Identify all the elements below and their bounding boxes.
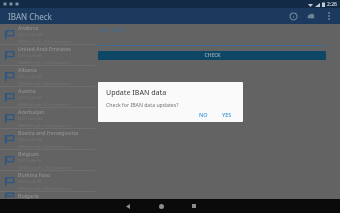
staticText: YES (222, 111, 232, 118)
staticText: IBAN length: 20 characters (18, 102, 71, 107)
staticText: Enter IBAN (98, 27, 124, 34)
staticText: ISO Code AL (18, 74, 43, 80)
button[interactable]: Bulgaria (0, 192, 95, 199)
staticText: Burkina Faso (18, 171, 51, 178)
button[interactable]: Burkina Faso (0, 171, 95, 191)
staticText: ISO Code BA (18, 137, 43, 143)
staticText: Andorra (18, 24, 39, 31)
button[interactable]: Belgium (0, 150, 95, 170)
button[interactable]: Azerbaijan (0, 108, 95, 128)
staticText: IBAN length: 28 characters (18, 186, 71, 191)
staticText: 2:26 (327, 1, 337, 8)
staticText: ISO Code AZ (18, 116, 43, 122)
staticText: ISO Code AT (18, 95, 42, 101)
staticText: ISO Code BE (18, 158, 43, 164)
button[interactable]: Bosnia and Herzegovina (0, 129, 95, 149)
staticText: Bulgaria (18, 192, 39, 199)
staticText: Bosnia and Herzegovina (18, 129, 78, 136)
staticText: Check for IBAN data updates? (106, 101, 179, 108)
button[interactable]: Info (287, 10, 299, 22)
staticText: IBAN length: 28 characters (18, 81, 71, 86)
button[interactable]: Home (153, 199, 169, 213)
button[interactable]: NO (194, 110, 213, 119)
staticText: Austria (18, 87, 36, 94)
button[interactable]: More options (323, 10, 335, 22)
staticText: IBAN length: 16 characters (18, 165, 71, 170)
button[interactable]: Albania (0, 66, 95, 86)
staticText: IBAN length: 24 characters (18, 39, 71, 44)
staticText: IBAN length: 20 characters (18, 144, 71, 149)
staticText: ISO Code AD (18, 32, 44, 38)
staticText: Belgium (18, 150, 39, 157)
staticText: Update IBAN data (106, 88, 167, 98)
staticText: ISO Code BF (18, 179, 43, 185)
staticText: IBAN length: 23 characters (18, 60, 71, 65)
button[interactable]: United Arab Emirates (0, 45, 95, 65)
staticText: IBAN length: 28 characters (18, 123, 71, 128)
staticText: ISO Code AE (18, 53, 43, 59)
button[interactable]: Recent apps (186, 199, 202, 213)
button[interactable]: Austria (0, 87, 95, 107)
button[interactable]: YES (217, 110, 237, 119)
button[interactable]: Back (120, 199, 136, 213)
button[interactable]: Update IBAN data (305, 10, 317, 22)
staticText: Azerbaijan (18, 108, 45, 115)
staticText: CHECK (204, 52, 221, 59)
staticText: United Arab Emirates (18, 45, 71, 52)
staticText: Albania (18, 66, 37, 73)
staticText: NO (199, 111, 208, 118)
button[interactable]: Andorra (0, 24, 95, 44)
staticText: IBAN Check (8, 11, 52, 22)
button[interactable]: CHECK (98, 51, 326, 60)
